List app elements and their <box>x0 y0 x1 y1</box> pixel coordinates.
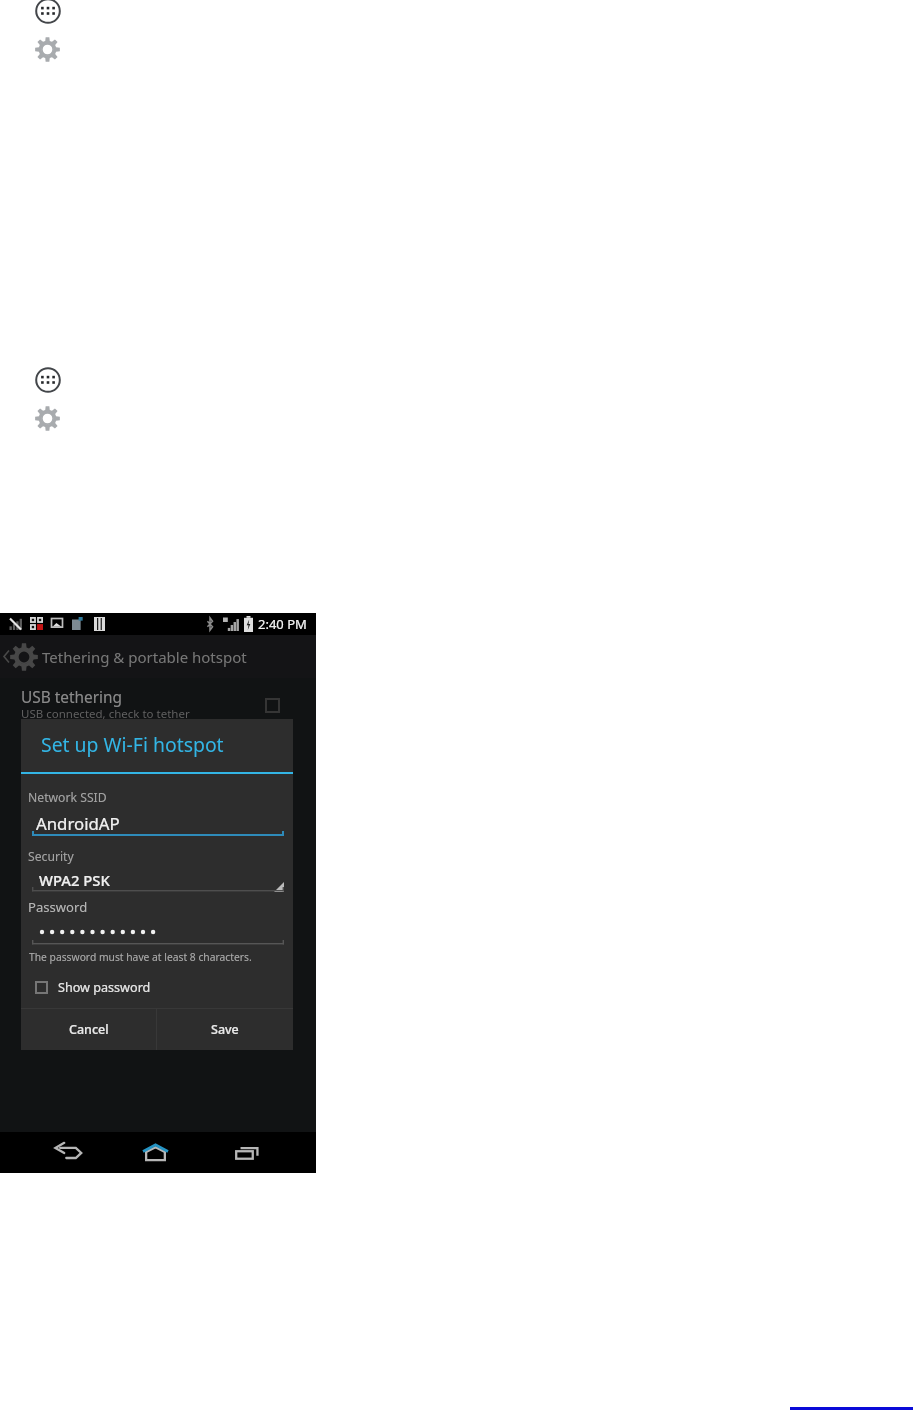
button[interactable]: Settings <box>35 37 60 62</box>
button[interactable]: WPA2 PSK <box>32 868 284 892</box>
staticText: Security <box>28 848 74 865</box>
staticText: USB connected, check to tether <box>21 706 190 722</box>
button[interactable]: All apps <box>35 367 61 393</box>
button[interactable]: USB tethering <box>0 678 316 1173</box>
button[interactable]: Save <box>157 1009 293 1050</box>
staticText: The password must have at least 8 charac… <box>29 950 252 964</box>
staticText: Network SSID <box>28 789 107 806</box>
staticText: AndroidAP <box>36 812 120 835</box>
staticText: Save <box>211 1021 239 1038</box>
staticText: Password <box>28 898 88 916</box>
button[interactable]: Tethering & portable hotspot <box>0 635 316 678</box>
button[interactable]: Show password <box>35 975 151 999</box>
staticText: Cancel <box>69 1021 109 1038</box>
button[interactable]: Back <box>46 1137 91 1168</box>
button[interactable]: All apps <box>35 0 61 24</box>
staticText: Set up Wi-Fi hotspot <box>41 731 224 757</box>
button[interactable]: Settings <box>35 406 60 431</box>
staticText: 2:40 PM <box>258 615 307 633</box>
button[interactable]: Recent apps <box>224 1137 269 1168</box>
button[interactable]: Cancel <box>21 1009 156 1050</box>
staticText: Show password <box>58 979 151 996</box>
staticText: WPA2 PSK <box>39 870 110 890</box>
staticText: USB tethering <box>21 687 122 708</box>
button[interactable]: Set up Wi-Fi hotspot <box>21 719 293 769</box>
staticText: Tethering & portable hotspot <box>42 647 247 667</box>
button[interactable]: Home <box>133 1137 178 1168</box>
